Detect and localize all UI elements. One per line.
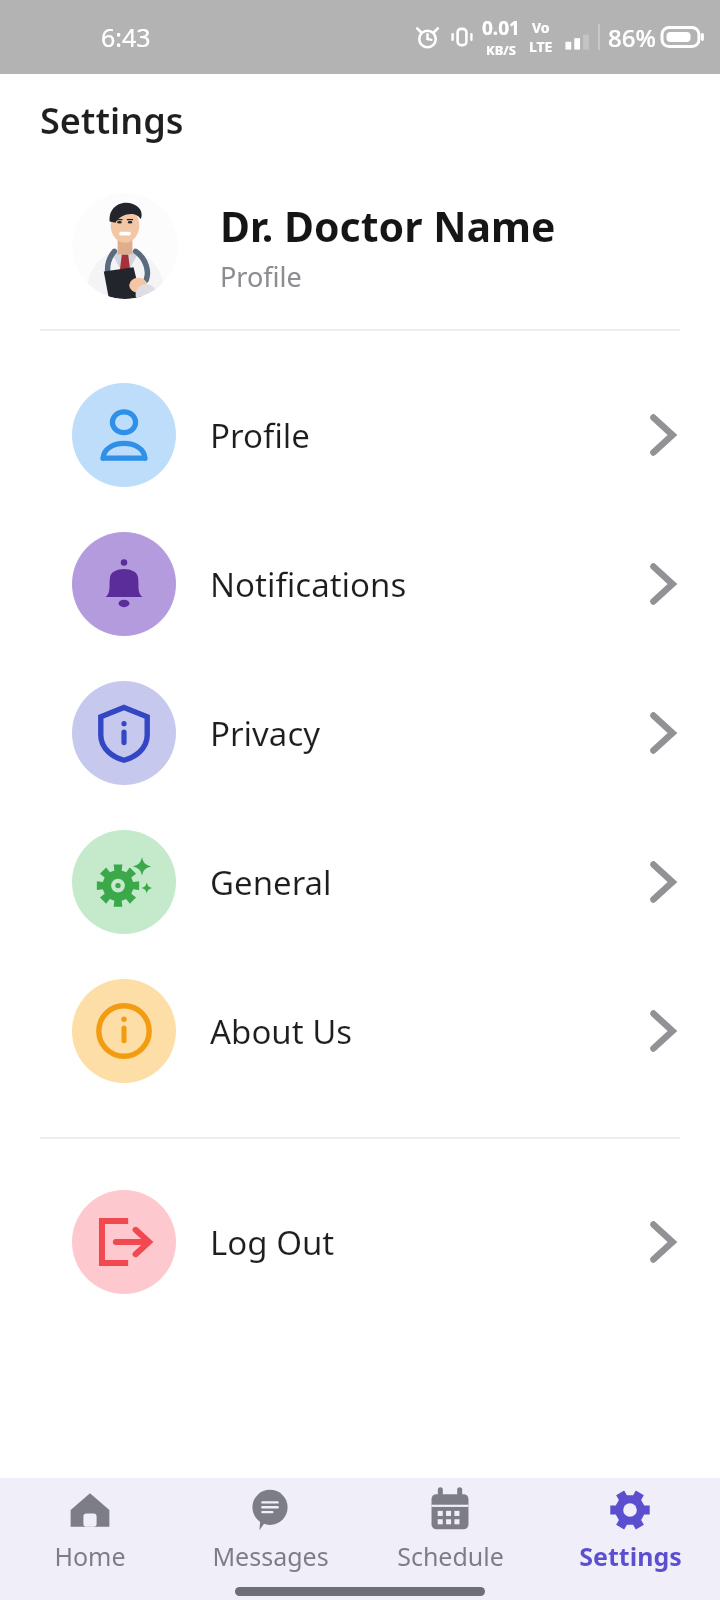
staticText: KB/S — [486, 41, 516, 59]
staticText: 0.01 — [482, 15, 520, 41]
staticText: Log Out — [210, 1220, 646, 1265]
button[interactable]: Schedule — [360, 1478, 540, 1582]
button[interactable]: Privacy — [0, 681, 720, 785]
staticText: Home — [54, 1539, 126, 1573]
staticText: Schedule — [397, 1539, 504, 1573]
staticText: Settings — [40, 96, 184, 145]
button[interactable]: Messages — [180, 1478, 360, 1582]
button[interactable]: Settings — [540, 1478, 720, 1582]
staticText: General — [210, 860, 646, 905]
staticText: Privacy — [210, 711, 646, 756]
staticText: 86% — [608, 21, 656, 54]
button[interactable]: Log Out — [0, 1190, 720, 1294]
staticText: About Us — [210, 1009, 646, 1054]
button[interactable]: Dr. Doctor Name — [0, 193, 720, 299]
staticText: Vo — [532, 18, 550, 37]
staticText: 6:43 — [101, 20, 151, 54]
staticText: Profile — [210, 413, 646, 458]
staticText: LTE — [529, 37, 553, 56]
button[interactable]: Profile — [0, 383, 720, 487]
button[interactable]: About Us — [0, 979, 720, 1083]
button[interactable]: Notifications — [0, 532, 720, 636]
staticText: Dr. Doctor Name — [220, 198, 556, 254]
staticText: Profile — [220, 258, 302, 295]
staticText: Notifications — [210, 562, 646, 607]
button[interactable]: Home — [0, 1478, 180, 1582]
staticText: Messages — [212, 1539, 329, 1573]
staticText: Settings — [579, 1539, 682, 1573]
button[interactable]: General — [0, 830, 720, 934]
